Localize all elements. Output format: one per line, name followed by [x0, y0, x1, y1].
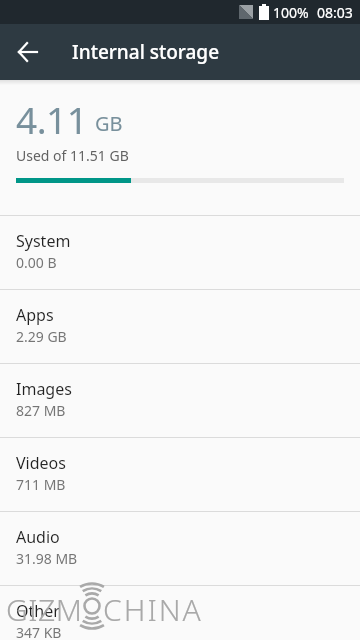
staticText: 100% [273, 3, 309, 22]
staticText: 31.98 MB [16, 549, 78, 568]
staticText: 4.11 [16, 94, 88, 144]
button[interactable]: System [0, 215, 360, 289]
staticText: GIZM [6, 589, 83, 630]
staticText: Images [16, 378, 72, 400]
button[interactable]: Audio [0, 511, 360, 585]
button[interactable] [0, 24, 56, 80]
button[interactable]: Images [0, 363, 360, 437]
staticText: 0.00 B [16, 253, 57, 272]
staticText: 827 MB [16, 401, 66, 420]
staticText: Used of 11.51 GB [16, 146, 129, 165]
staticText: Apps [16, 304, 54, 326]
button[interactable]: Apps [0, 289, 360, 363]
staticText: GB [95, 110, 123, 137]
staticText: Videos [16, 452, 66, 474]
staticText: CHINA [103, 589, 203, 630]
staticText: 2.29 GB [16, 327, 67, 346]
staticText: Internal storage [72, 39, 220, 65]
staticText: System [16, 230, 71, 252]
staticText: 347 KB [16, 623, 62, 640]
staticText: Audio [16, 526, 60, 548]
button[interactable]: Other [0, 585, 360, 640]
staticText: 711 MB [16, 475, 66, 494]
button[interactable]: Videos [0, 437, 360, 511]
staticText: 08:03 [317, 3, 353, 22]
staticText: Other [16, 600, 60, 622]
